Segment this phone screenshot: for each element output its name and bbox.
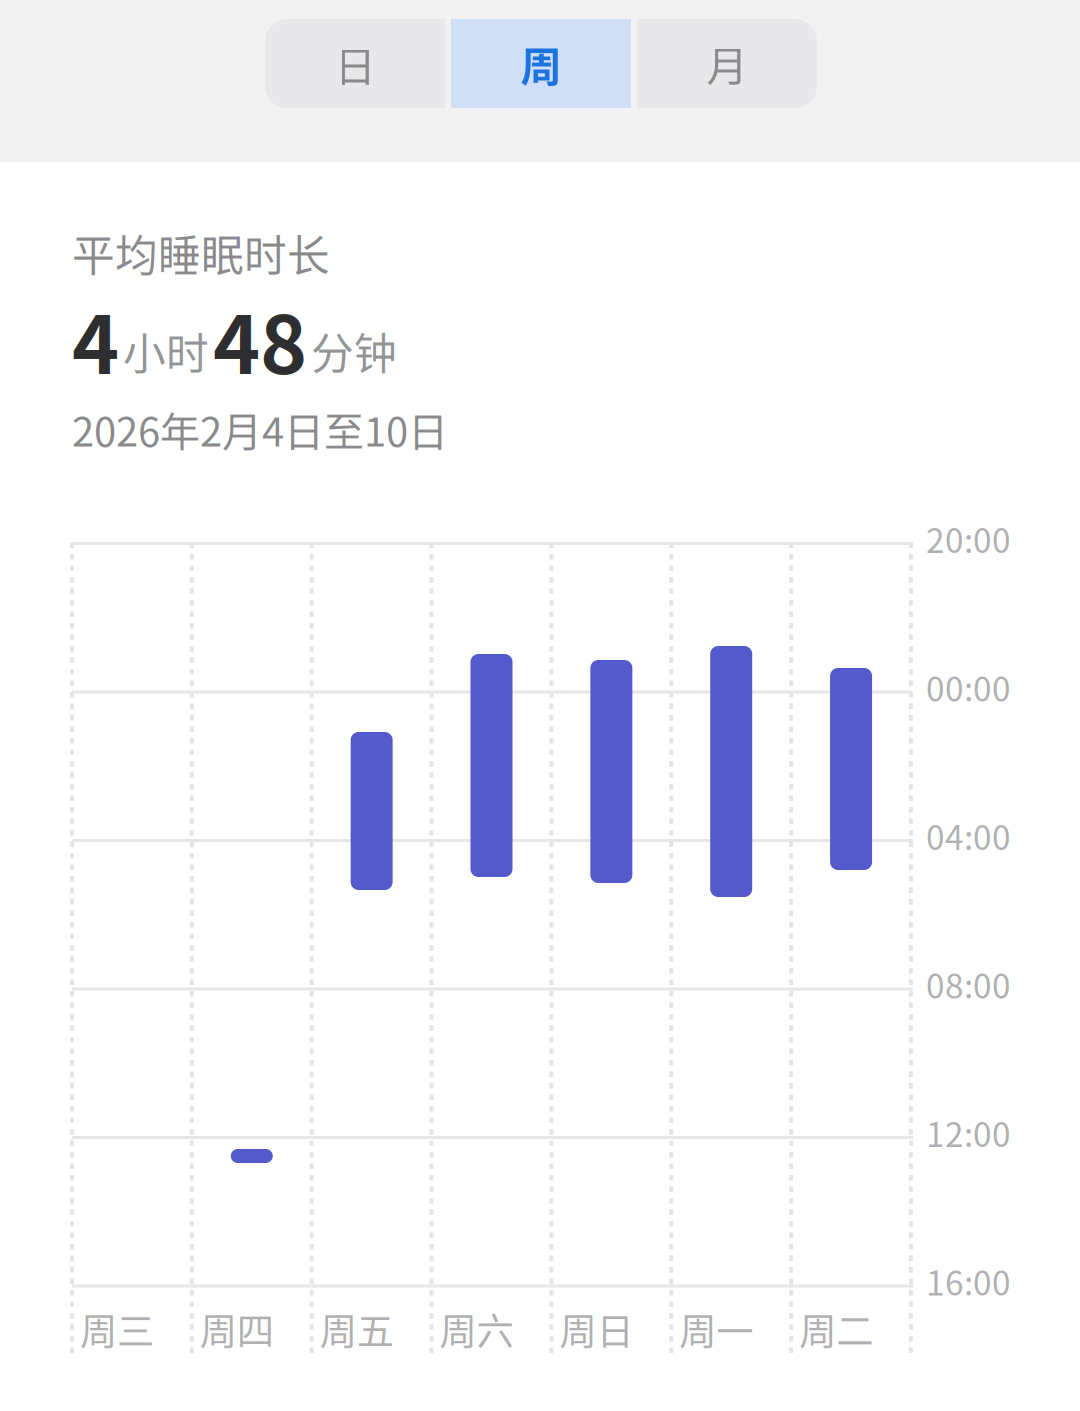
staticText: 4 xyxy=(72,281,119,397)
staticText: 分钟 xyxy=(311,320,397,382)
staticText: 08:00 xyxy=(926,960,1011,1008)
staticText: 00:00 xyxy=(926,663,1011,711)
staticText: 周三 xyxy=(80,1302,154,1356)
staticText: 周二 xyxy=(799,1302,873,1356)
staticText: 04:00 xyxy=(926,811,1011,860)
button[interactable]: 月 xyxy=(637,19,817,108)
staticText: 周日 xyxy=(559,1302,633,1356)
staticText: 12:00 xyxy=(926,1108,1011,1157)
staticText: 16:00 xyxy=(926,1257,1011,1305)
staticText: 小时 xyxy=(123,320,209,382)
staticText: 月 xyxy=(706,34,747,93)
staticText: 周 xyxy=(520,34,561,93)
staticText: 周六 xyxy=(440,1302,514,1356)
staticText: 48 xyxy=(213,281,307,397)
button[interactable]: 日 xyxy=(265,19,445,108)
staticText: 日 xyxy=(334,34,375,93)
staticText: 2026年2月4日至10日 xyxy=(72,400,448,458)
staticText: 周一 xyxy=(679,1302,753,1356)
staticText: 平均睡眠时长 xyxy=(72,222,330,284)
staticText: 周四 xyxy=(200,1302,274,1356)
staticText: 20:00 xyxy=(926,514,1011,563)
button[interactable]: 周 xyxy=(451,19,631,108)
staticText: 周五 xyxy=(320,1302,394,1356)
